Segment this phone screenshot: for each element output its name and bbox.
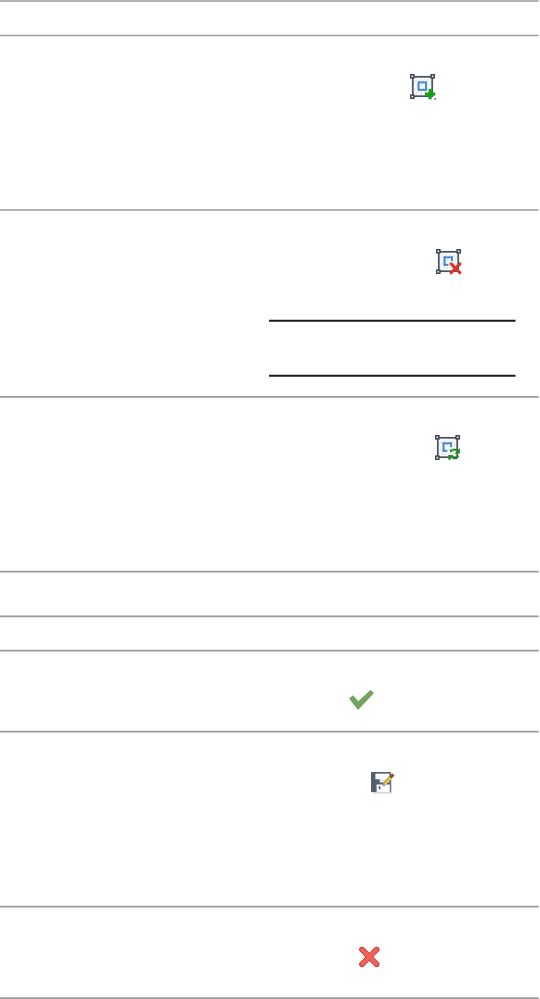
button[interactable]: Save <box>368 769 394 795</box>
button[interactable]: Delete selection <box>436 249 461 274</box>
button[interactable]: No <box>359 947 380 968</box>
button[interactable]: Yes <box>349 690 374 710</box>
button[interactable]: Add selection <box>410 74 435 99</box>
button[interactable]: Update selection <box>435 435 460 460</box>
